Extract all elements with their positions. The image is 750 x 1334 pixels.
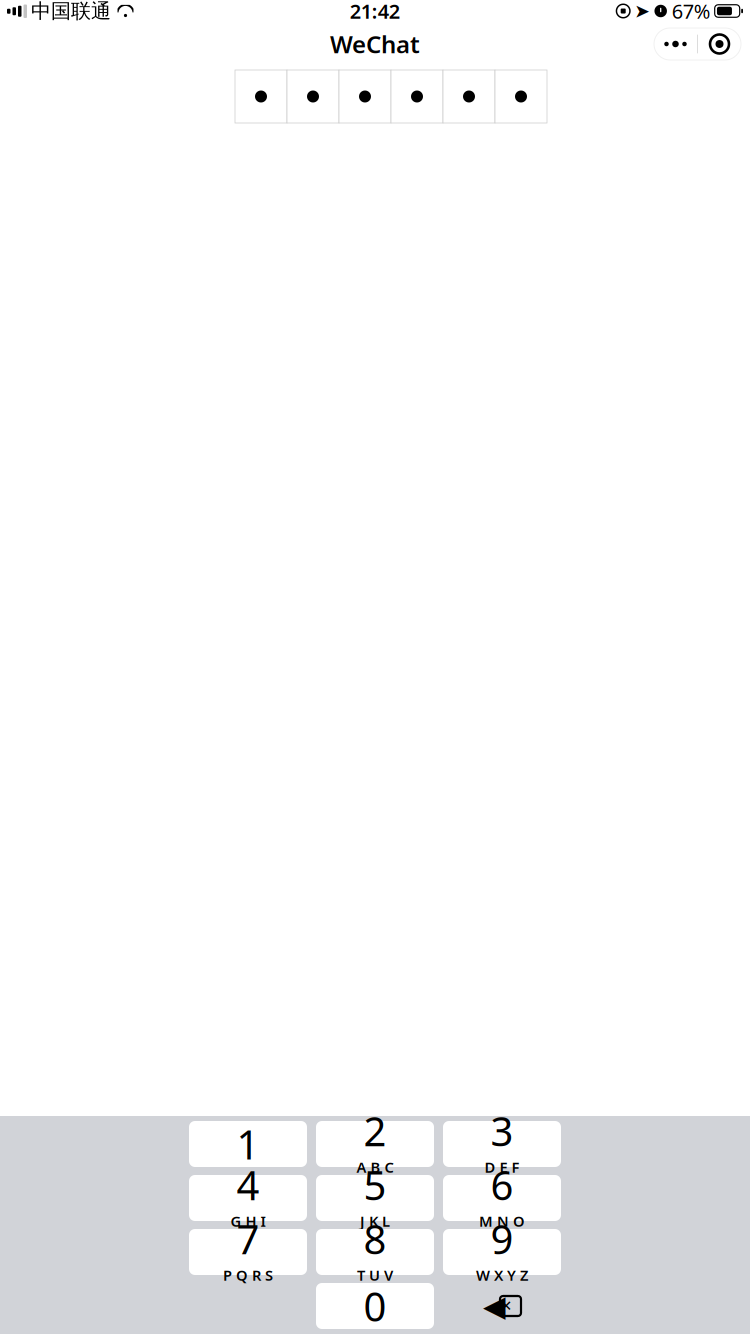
button[interactable]: 6 <box>443 1175 561 1221</box>
button[interactable]: 8 <box>316 1229 434 1275</box>
staticText: 5 <box>363 1158 386 1211</box>
button[interactable]: 2 <box>316 1121 434 1167</box>
staticText: 1 <box>236 1117 259 1170</box>
staticText: G H I <box>230 1211 265 1231</box>
staticText: WeChat <box>330 28 420 60</box>
button[interactable]: More <box>654 28 697 60</box>
button[interactable]: 7 <box>189 1229 307 1275</box>
button[interactable]: Delete <box>443 1283 561 1329</box>
button[interactable]: 1 <box>189 1121 307 1167</box>
staticText: 4 <box>236 1158 259 1211</box>
staticText: 3 <box>490 1104 513 1157</box>
staticText: W X Y Z <box>476 1265 528 1285</box>
staticText: 21:42 <box>350 0 400 24</box>
staticText: 7 <box>236 1212 259 1265</box>
button[interactable]: 5 <box>316 1175 434 1221</box>
button[interactable]: 9 <box>443 1229 561 1275</box>
staticText: ➤ <box>634 0 650 22</box>
staticText: 67% <box>672 0 711 24</box>
staticText: A B C <box>356 1157 393 1177</box>
staticText: P Q R S <box>223 1265 273 1285</box>
staticText: 9 <box>490 1212 513 1265</box>
staticText: ✕ <box>500 1298 512 1314</box>
staticText: 中国联通 <box>31 0 111 23</box>
staticText: ◀ <box>483 1289 506 1323</box>
staticText: 2 <box>363 1104 386 1157</box>
button[interactable]: 0 <box>316 1283 434 1329</box>
button[interactable]: Close <box>698 28 741 60</box>
staticText: T U V <box>357 1265 393 1285</box>
staticText: 8 <box>363 1212 386 1265</box>
staticText: D E F <box>484 1157 519 1177</box>
staticText: 0 <box>363 1279 386 1332</box>
staticText: M N O <box>479 1211 525 1231</box>
staticText: J K L <box>360 1211 390 1231</box>
button[interactable]: 4 <box>189 1175 307 1221</box>
staticText: 6 <box>490 1158 513 1211</box>
button[interactable]: 3 <box>443 1121 561 1167</box>
